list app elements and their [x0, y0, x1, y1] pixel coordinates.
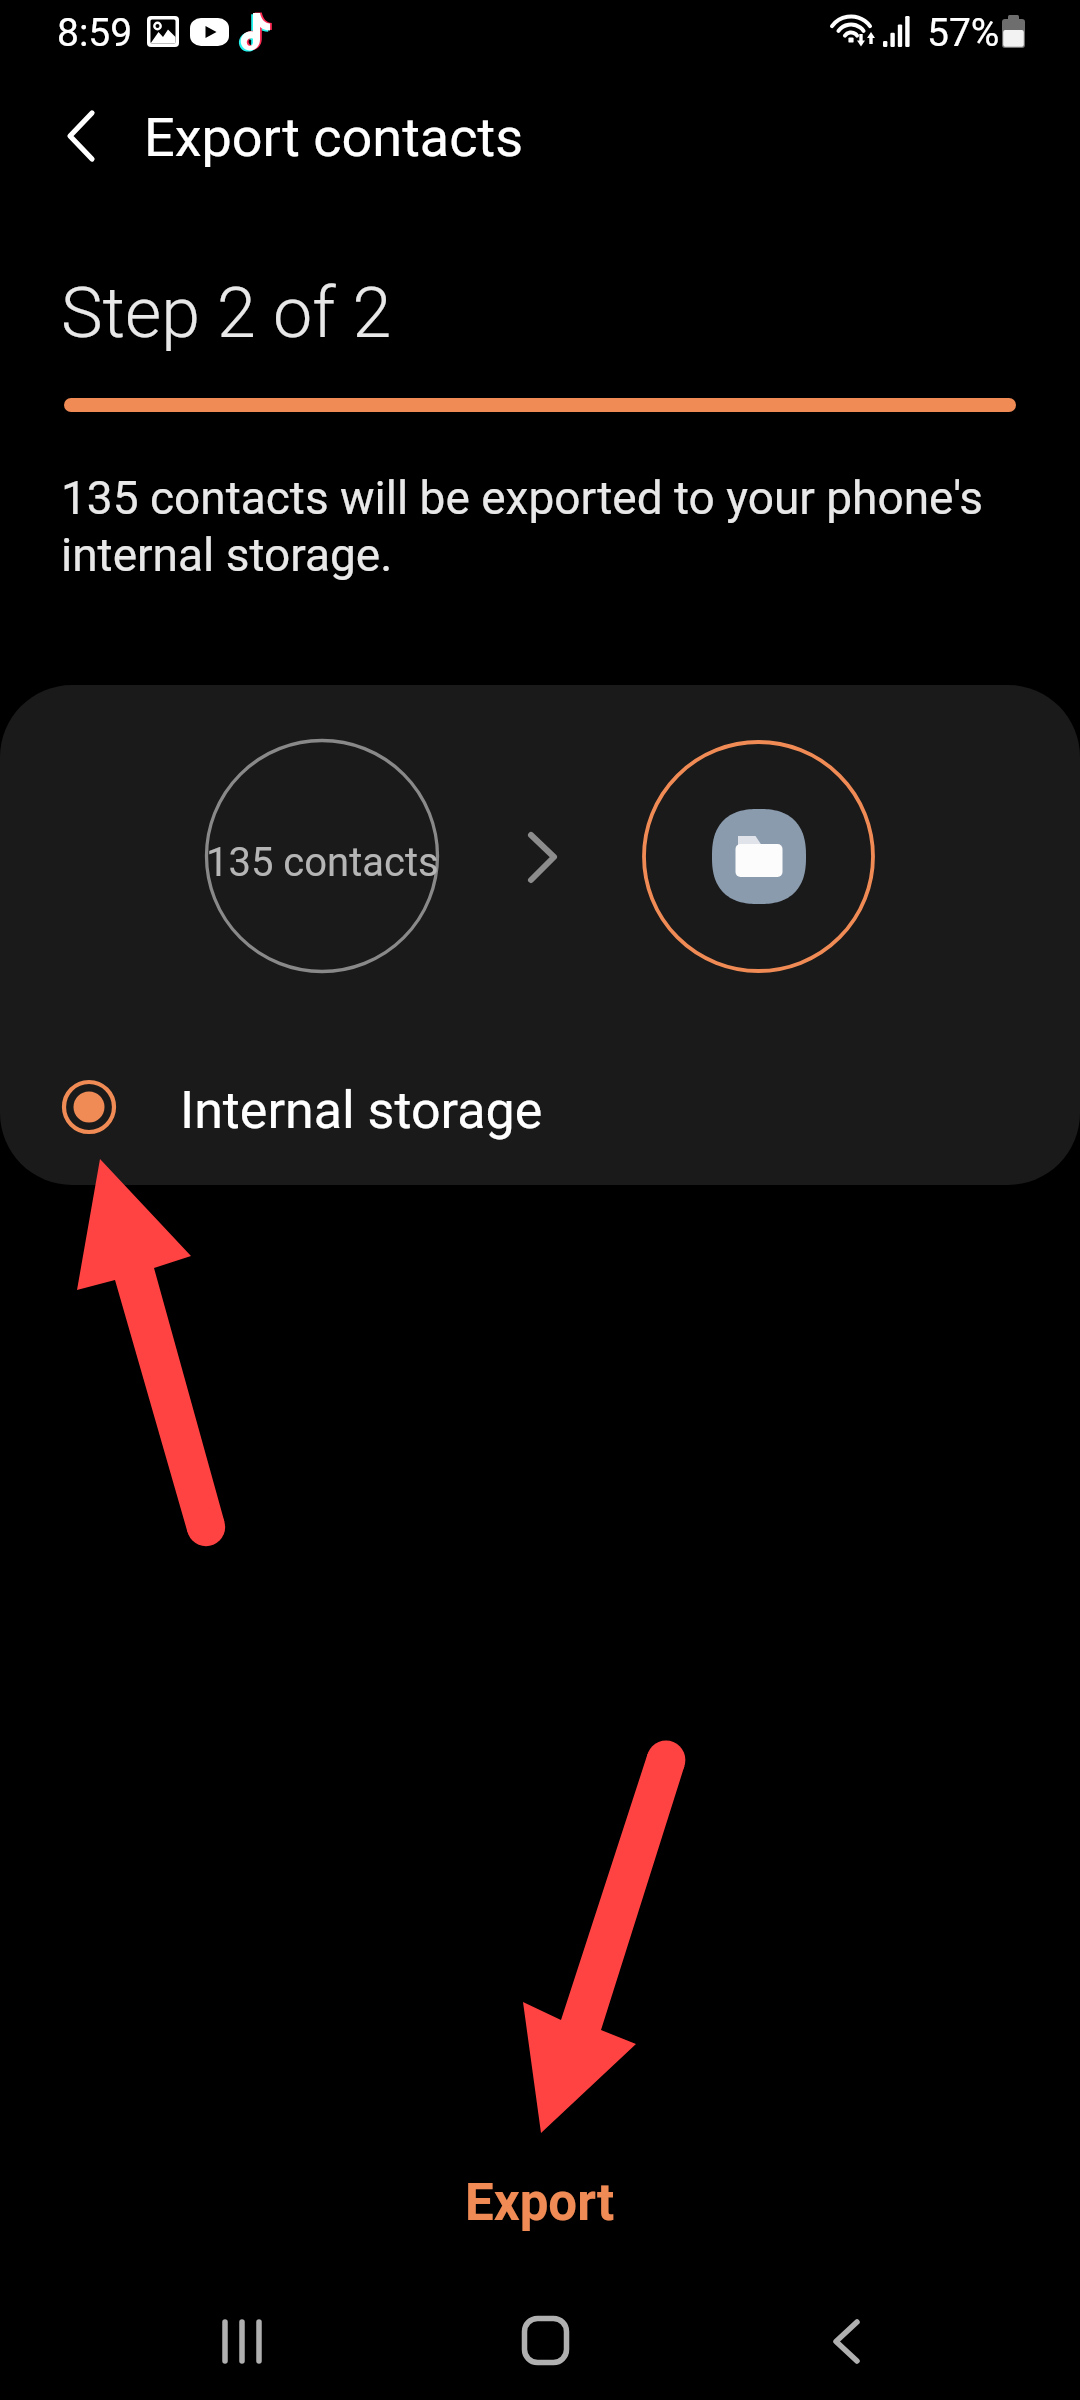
button[interactable]: Navigate up — [42, 96, 122, 176]
staticText: Export — [465, 2173, 615, 2233]
button[interactable]: Back — [786, 2283, 906, 2400]
staticText: Step 2 of 2 — [61, 272, 392, 354]
staticText: 135 contacts — [206, 839, 439, 886]
staticText: 8:59 — [57, 10, 133, 56]
staticText: 135 contacts will be exported to your ph… — [61, 471, 1001, 582]
staticText: 57% — [927, 10, 1000, 56]
staticText: Internal storage — [180, 1080, 543, 1141]
button[interactable]: Internal storage — [0, 1048, 1080, 1173]
button[interactable]: Export — [0, 2148, 1080, 2258]
button[interactable]: Home — [484, 2283, 604, 2400]
button[interactable]: Recent apps — [180, 2283, 300, 2400]
staticText: Export contacts — [144, 106, 524, 169]
